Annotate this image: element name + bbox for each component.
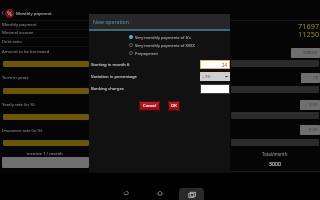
staticText: Monthly payment bbox=[16, 10, 52, 16]
button[interactable]: Prepayment bbox=[129, 49, 230, 57]
staticText: Term in years bbox=[2, 75, 29, 81]
button[interactable]: Very monthly payments of It's bbox=[129, 33, 230, 41]
staticText: 0.30 bbox=[309, 127, 318, 133]
button[interactable]: Cancel bbox=[139, 101, 160, 111]
button[interactable]: Recent apps bbox=[179, 188, 204, 200]
other: Back bbox=[1, 11, 4, 15]
button[interactable] bbox=[200, 84, 230, 94]
staticText: Very monthly payments of XXXX bbox=[135, 43, 195, 48]
button[interactable]: 18 bbox=[301, 73, 320, 83]
staticText: Total/month bbox=[262, 151, 288, 157]
button[interactable]: 3.50 bbox=[300, 100, 320, 110]
button[interactable]: Debt ratio bbox=[0, 38, 89, 46]
staticText: income 1 / month bbox=[27, 150, 63, 156]
button[interactable]: OK bbox=[168, 101, 180, 111]
staticText: 3000 bbox=[269, 160, 281, 167]
staticText: 18 bbox=[313, 75, 318, 81]
staticText: Cancel bbox=[143, 103, 157, 109]
button[interactable]: Minimal income bbox=[0, 29, 89, 37]
staticText: Minimal income bbox=[2, 30, 34, 36]
button[interactable]: Very monthly payments of XXXX bbox=[129, 41, 230, 49]
button[interactable]: 24 bbox=[200, 60, 230, 69]
button[interactable]: Back bbox=[114, 181, 138, 200]
staticText: New operation bbox=[93, 18, 129, 25]
button[interactable]: Back bbox=[0, 0, 89, 20]
staticText: Debt ratio bbox=[2, 39, 22, 45]
staticText: Yearly rate (in %) bbox=[2, 102, 35, 108]
button[interactable]: Monthly payment bbox=[0, 21, 89, 29]
staticText: Banking charges bbox=[91, 86, 124, 92]
staticText: Variation in percentage bbox=[91, 74, 137, 80]
button[interactable]: 0.30 bbox=[300, 125, 320, 135]
staticText: Prepayment bbox=[135, 51, 158, 56]
staticText: Amount to be borrowed bbox=[2, 49, 50, 55]
staticText: 71697 bbox=[298, 21, 320, 31]
button[interactable]: 200000 bbox=[291, 48, 320, 58]
staticText: 24 bbox=[222, 62, 228, 68]
staticText: OK bbox=[171, 103, 177, 109]
staticText: 200000 bbox=[303, 50, 318, 56]
staticText: + 5% bbox=[202, 74, 211, 79]
button[interactable]: + 5% bbox=[200, 72, 230, 81]
staticText: 11250 bbox=[298, 29, 320, 39]
staticText: Very monthly payments of It's bbox=[135, 35, 191, 40]
staticText: Monthly payment bbox=[2, 22, 37, 28]
staticText: Starting in month # bbox=[91, 62, 130, 68]
staticText: Insurance rate (in %) bbox=[2, 128, 43, 134]
staticText: 3.50 bbox=[309, 102, 318, 108]
button[interactable]: Home bbox=[148, 181, 172, 200]
